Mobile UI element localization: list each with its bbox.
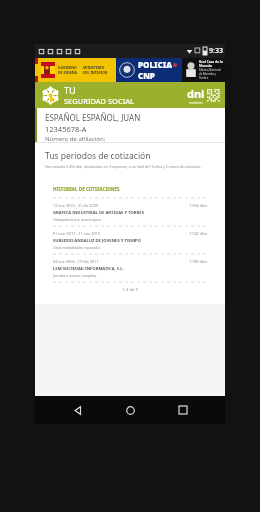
staticText: Trabajador/a por cuenta ajena bbox=[53, 217, 102, 222]
staticText: LSM SOCIEDAD INFORMATICA, S.L. bbox=[53, 266, 124, 272]
staticText: GRAFICA INDUSTRIAL DE ARTIGAS Y TORRES bbox=[53, 210, 144, 216]
staticText: Número de afiliación: bbox=[45, 135, 106, 142]
staticText: HISTORIAL DE COTIZACIONES bbox=[53, 186, 120, 192]
staticText: 12 ene 2015 - 31 dic 2020 bbox=[53, 203, 98, 208]
button[interactable]: Home bbox=[120, 400, 140, 420]
staticText: Real Casa de la Moneda bbox=[199, 60, 225, 68]
button[interactable]: 12 ene 2015 - 31 dic 2020 bbox=[53, 199, 207, 226]
staticText: Has cotizado 5.456 días, distribuidos en… bbox=[45, 164, 202, 169]
staticText: Otras modalidades especiales bbox=[53, 245, 101, 250]
staticText: electrónico bbox=[189, 101, 203, 105]
staticText: Jornada a tiempo completo bbox=[53, 273, 97, 278]
staticText: POLICIA bbox=[138, 59, 173, 70]
staticText: 1.934 días bbox=[189, 203, 207, 208]
staticText: TU bbox=[64, 84, 76, 96]
staticText: DE ESPAÑA bbox=[58, 70, 77, 75]
staticText: 04 ene 2006 - 19 feb 2011 bbox=[53, 259, 99, 264]
staticText: Fábrica Nacional bbox=[199, 68, 221, 72]
staticText: 1-3 de 3 bbox=[122, 287, 138, 293]
staticText: Tus periodos de cotización bbox=[45, 150, 151, 162]
staticText: de Moneda y Timbre bbox=[199, 72, 225, 80]
staticText: 1.780 días bbox=[189, 259, 207, 264]
button[interactable]: Recents bbox=[173, 400, 193, 420]
button[interactable]: 04 ene 2006 - 19 feb 2011 bbox=[53, 255, 207, 282]
staticText: ESPAÑOL ESPAÑOL, JUAN bbox=[45, 112, 141, 123]
staticText: DEL INTERIOR bbox=[83, 70, 108, 75]
staticText: MINISTERIO bbox=[83, 65, 105, 70]
staticText: SUBSIDIO ANDALUZ DE JOVENES Y TIEMPO bbox=[53, 238, 141, 244]
staticText: 1.742 días bbox=[189, 231, 207, 236]
staticText: SEGURIDAD SOCIAL bbox=[64, 96, 134, 106]
staticText: dni bbox=[187, 86, 205, 101]
staticText: CNP bbox=[138, 70, 155, 81]
staticText: 9:33 bbox=[209, 46, 223, 56]
button[interactable]: Back bbox=[68, 400, 88, 420]
staticText: GOBIERNO bbox=[58, 65, 77, 70]
button[interactable]: 1-3 de 3 bbox=[53, 287, 207, 293]
staticText: 01 mar 2011 - 11 ene 2015 bbox=[53, 231, 101, 236]
staticText: 12345678-A bbox=[45, 124, 87, 134]
button[interactable]: 01 mar 2011 - 11 ene 2015 bbox=[53, 227, 207, 254]
